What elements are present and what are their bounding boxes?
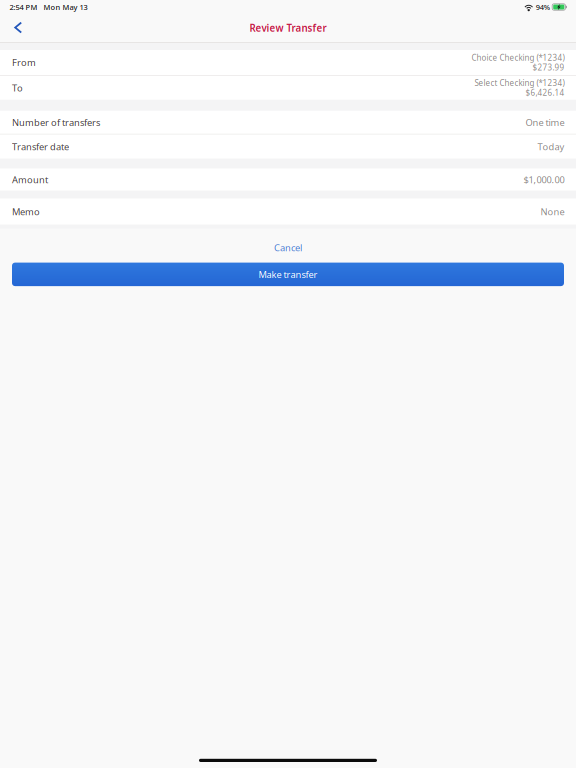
staticText: Memo — [12, 205, 40, 218]
button[interactable]: Cancel — [0, 240, 576, 256]
button[interactable]: From — [0, 50, 576, 76]
staticText: Cancel — [274, 241, 302, 254]
staticText: 94% — [536, 2, 550, 12]
staticText: $1,000.00 — [523, 173, 564, 186]
button[interactable]: Amount — [0, 169, 576, 191]
button[interactable]: To — [0, 76, 576, 100]
staticText: One time — [525, 116, 564, 129]
staticText: $273.99 — [532, 62, 564, 73]
staticText: Review Transfer — [249, 21, 326, 35]
staticText: Choice Checking (*1234) — [471, 52, 564, 63]
button[interactable]: Back — [0, 14, 35, 42]
staticText: To — [12, 81, 23, 94]
staticText: Number of transfers — [12, 116, 100, 129]
staticText: $6,426.14 — [525, 87, 564, 98]
staticText: None — [540, 205, 564, 218]
staticText: Mon May 13 — [43, 2, 87, 12]
staticText: Amount — [12, 173, 48, 186]
staticText: Make transfer — [258, 268, 317, 281]
staticText: Transfer date — [12, 140, 69, 153]
button[interactable]: Memo — [0, 199, 576, 225]
staticText: Select Checking (*1234) — [474, 77, 564, 88]
staticText: From — [12, 56, 36, 69]
button[interactable]: Number of transfers — [0, 111, 576, 135]
button[interactable]: Make transfer — [0, 263, 576, 286]
button[interactable]: Transfer date — [0, 135, 576, 159]
staticText: 2:54 PM — [9, 2, 37, 12]
staticText: Today — [537, 140, 564, 153]
